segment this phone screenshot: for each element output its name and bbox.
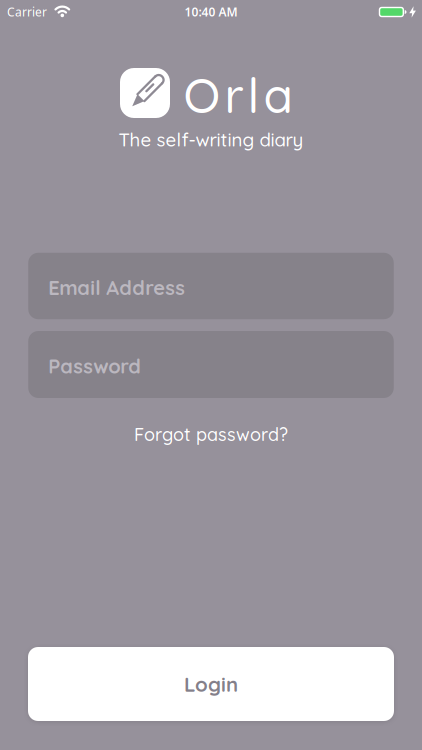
button[interactable]: Login [28,647,394,721]
button[interactable]: Forgot password? [134,423,288,446]
staticText: The self-writing diary [118,128,303,151]
button[interactable]: Email Address [28,253,394,319]
staticText: 10:40 AM [184,4,237,20]
staticText: Carrier [7,4,47,20]
staticText: Email Address [48,275,185,300]
button[interactable]: Password [28,331,394,398]
staticText: Orla [183,65,292,125]
staticText: Password [48,353,141,378]
staticText: Login [184,671,238,697]
staticText: Forgot password? [134,423,288,446]
